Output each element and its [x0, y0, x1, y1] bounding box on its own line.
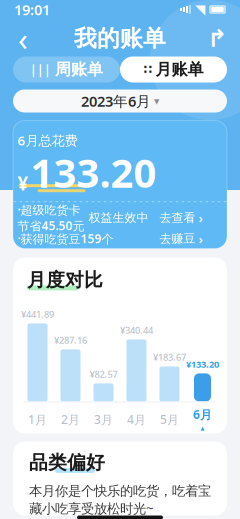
staticText: 2月 — [61, 411, 80, 427]
button[interactable]: ∷ — [120, 56, 227, 82]
staticText: 去赚豆 — [159, 231, 195, 246]
staticText: 周账单 — [55, 60, 103, 79]
staticText: 3月 — [94, 411, 113, 427]
button[interactable]: ·超级吃货卡节省45.50元 — [3, 211, 217, 224]
staticText: › — [195, 209, 203, 227]
staticText: ¥ — [17, 171, 28, 196]
staticText: 19:01 — [14, 0, 50, 19]
staticText: 品类偏好 — [29, 451, 105, 474]
staticText: ¥441.89 — [21, 308, 54, 320]
staticText: 6月 — [193, 406, 212, 422]
button[interactable]: Back — [8, 23, 38, 53]
staticText: 权益生效中 — [84, 210, 148, 225]
button[interactable]: Share — [202, 23, 232, 53]
staticText: ¥183.67 — [153, 351, 186, 363]
button[interactable]: ||| — [13, 56, 120, 82]
button[interactable]: 2023年6月 — [13, 89, 227, 112]
staticText: › — [195, 230, 203, 248]
button[interactable]: ·获得吃货豆159个 — [3, 232, 217, 245]
staticText: 去查看 — [159, 210, 195, 225]
staticText: 月账单 — [155, 60, 203, 79]
staticText: 月度对比 — [27, 268, 103, 291]
staticText: ¥340.44 — [120, 324, 153, 336]
staticText: ·超级吃货卡节省45.50元 — [17, 202, 84, 234]
staticText: ¥133.20 — [186, 358, 219, 370]
staticText: ¥82.57 — [89, 368, 117, 380]
staticText: 6月总花费 — [17, 131, 77, 149]
staticText: ·获得吃货豆159个 — [17, 231, 113, 247]
staticText: ‹ — [18, 17, 28, 60]
staticText: 2023年6月 — [81, 91, 151, 111]
staticText: ▾ — [154, 95, 159, 107]
staticText: 133.20 — [30, 146, 156, 199]
staticText: 我的账单 — [74, 25, 166, 52]
staticText: ↱ — [207, 25, 227, 52]
staticText: ◥ — [195, 2, 205, 17]
staticText: ¥287.16 — [54, 334, 87, 346]
staticText: 4月 — [127, 411, 146, 427]
staticText: ||| — [30, 61, 51, 77]
staticText: ∷ — [143, 63, 151, 76]
staticText: 1月 — [28, 411, 47, 427]
staticText: 5月 — [160, 411, 179, 427]
staticText: 本月你是个快乐的吃货，吃着宝藏小吃享受放松时光~ — [29, 483, 211, 517]
staticText: ▴ — [200, 423, 204, 432]
